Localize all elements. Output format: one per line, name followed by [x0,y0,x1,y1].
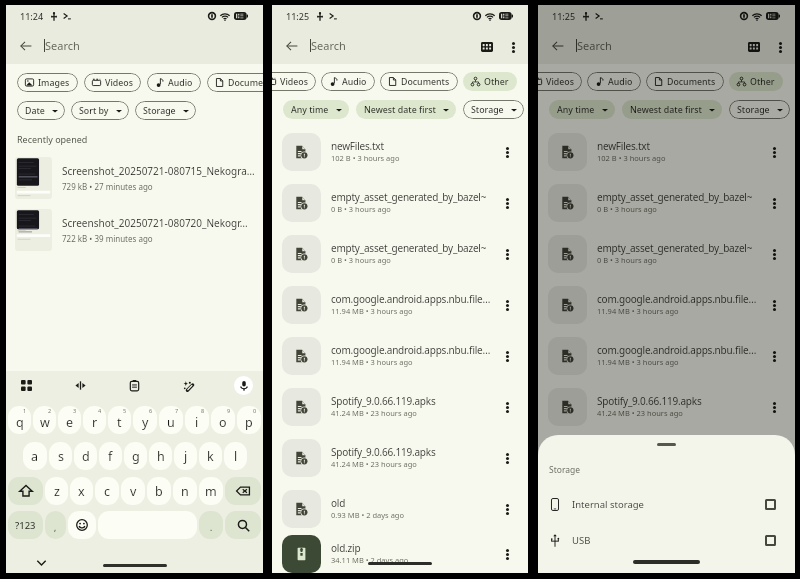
button[interactable]: x [70,477,93,505]
button[interactable]: Switch keyboard [18,377,35,394]
button[interactable]: Text edit [72,377,89,394]
button[interactable]: Documents [646,72,724,91]
button[interactable]: p [237,406,261,434]
button[interactable]: Shift [8,477,43,505]
button[interactable]: Newest date first [356,100,456,119]
button[interactable]: Back [280,34,304,58]
button[interactable]: newFiles.txt [272,126,528,177]
button[interactable]: USB [538,526,795,554]
button[interactable]: w [33,406,56,434]
button[interactable]: t [108,406,131,434]
button[interactable]: Sort by [71,101,129,120]
button[interactable]: z [45,477,68,505]
button[interactable]: Audio [147,73,201,92]
button[interactable]: Hide keyboard [34,555,48,569]
button[interactable]: Screenshot_20250721-080720_Nekogr… [6,209,263,251]
button[interactable]: old.zip [538,534,795,573]
button[interactable]: More options [761,142,787,162]
button[interactable]: More options [494,544,520,564]
button[interactable]: Screenshot_20250721-080715_Nekogra… [6,157,263,199]
button[interactable]: Voice input [234,376,253,395]
button[interactable]: com.google.android.apps.nbu.filepr [538,330,795,381]
button[interactable]: Internal storage [538,490,795,518]
button[interactable]: Grid view [476,36,498,58]
button[interactable]: More options [503,37,523,57]
button[interactable]: u [159,406,183,434]
button[interactable]: q [8,406,31,434]
button[interactable]: Any time [283,100,349,119]
button[interactable]: f [99,442,122,470]
button[interactable]: Other [463,72,517,91]
button[interactable]: com.google.android.apps.nbu.filepr [272,330,528,381]
button[interactable]: empty_asset_generated_by_bazel~ [272,228,528,279]
button[interactable]: ?123 [8,511,43,539]
button[interactable]: More options [761,544,787,564]
button[interactable]: More options [494,295,520,315]
button[interactable]: old.zip [272,534,528,573]
button[interactable]: i [185,406,209,434]
button[interactable]: Back [14,34,38,58]
button[interactable]: v [121,477,145,505]
button[interactable]: Emoji [68,511,96,539]
button[interactable]: Back [546,34,570,58]
button[interactable]: Audio [587,72,641,91]
button[interactable]: Backspace [225,477,261,505]
button[interactable]: empty_asset_generated_by_bazel~ [538,177,795,228]
button[interactable]: Search [225,511,261,539]
button[interactable]: a [23,442,47,470]
button[interactable]: More options [761,499,787,519]
button[interactable]: More options [494,499,520,519]
button[interactable]: Newest date first [622,100,722,119]
button[interactable]: AI suggestions [180,377,197,394]
button[interactable]: Date [17,101,65,120]
button[interactable]: y [133,406,157,434]
button[interactable]: More options [494,142,520,162]
button[interactable]: More options [770,37,790,57]
button[interactable]: Storage [135,101,196,120]
button[interactable]: Space [98,511,197,539]
button[interactable]: Documents [207,73,263,92]
button[interactable]: Spotify_9.0.66.119.apks [538,432,795,483]
button[interactable]: c [95,477,119,505]
button[interactable]: More options [494,448,520,468]
button[interactable]: More options [761,244,787,264]
button[interactable]: More options [494,397,520,417]
button[interactable]: More options [761,397,787,417]
button[interactable]: Images [17,73,78,92]
button[interactable]: Storage [463,100,524,119]
button[interactable]: More options [494,346,520,366]
button[interactable]: h [149,442,172,470]
button[interactable]: More options [494,193,520,213]
button[interactable]: Documents [380,72,458,91]
button[interactable]: newFiles.txt [538,126,795,177]
button[interactable]: Videos [272,72,316,91]
button[interactable]: More options [761,295,787,315]
button[interactable]: k [199,442,222,470]
button[interactable]: old [538,483,795,534]
button[interactable]: old [272,483,528,534]
button[interactable]: s [49,442,72,470]
button[interactable]: empty_asset_generated_by_bazel~ [538,228,795,279]
button[interactable]: More options [761,193,787,213]
button[interactable]: Audio [321,72,375,91]
button[interactable]: Spotify_9.0.66.119.apks [538,381,795,432]
button[interactable]: More options [494,244,520,264]
button[interactable]: g [124,442,147,470]
button[interactable]: d [74,442,97,470]
button[interactable]: m [199,477,223,505]
button[interactable]: n [173,477,197,505]
button[interactable]: Grid view [743,36,765,58]
button[interactable]: Clipboard [126,377,143,394]
button[interactable]: Storage [729,100,790,119]
button[interactable]: More options [761,346,787,366]
button[interactable]: . [199,511,223,539]
button[interactable]: Videos [538,72,582,91]
button[interactable]: e [58,406,81,434]
button[interactable]: Any time [549,100,615,119]
button[interactable]: , [45,511,66,539]
button[interactable]: Spotify_9.0.66.119.apks [272,432,528,483]
button[interactable]: Videos [84,73,141,92]
button[interactable]: r [83,406,106,434]
button[interactable]: b [147,477,171,505]
